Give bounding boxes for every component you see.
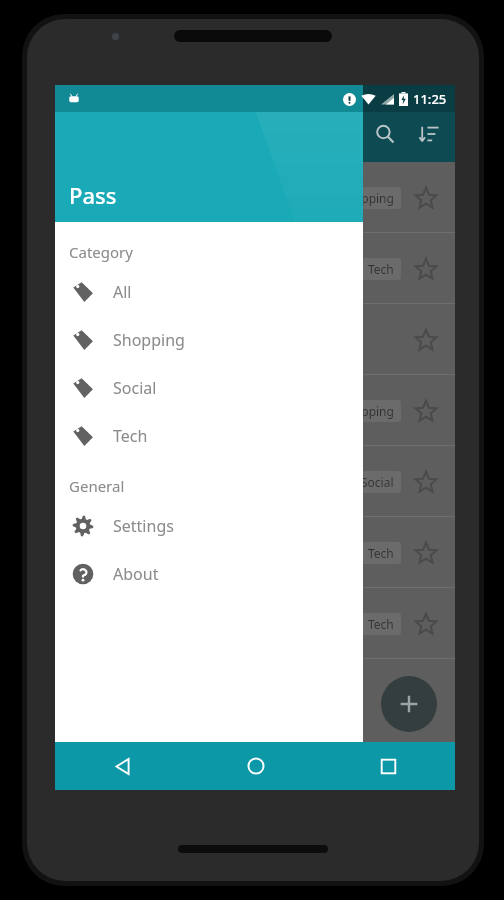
button[interactable]: Shopping — [55, 162, 455, 233]
button[interactable]: Favourite — [411, 396, 441, 426]
button[interactable]: Social — [55, 446, 455, 517]
button[interactable]: Recents — [322, 742, 455, 790]
staticText: Tech — [368, 616, 394, 632]
button[interactable]: Favourite — [411, 467, 441, 497]
button[interactable]: Favourite — [55, 304, 455, 375]
button[interactable]: Favourite — [411, 538, 441, 568]
button[interactable]: Tech — [55, 517, 455, 588]
button[interactable]: Add — [381, 676, 437, 732]
button[interactable]: Favourite — [411, 254, 441, 284]
button[interactable]: Tech — [55, 412, 363, 460]
staticText: 11:25 — [413, 90, 447, 108]
staticText: Social — [113, 377, 157, 399]
button[interactable]: Favourite — [411, 609, 441, 639]
staticText: Pass — [69, 180, 117, 210]
button[interactable]: Favourite — [411, 183, 441, 213]
button[interactable]: Search — [365, 114, 405, 154]
staticText: All — [113, 281, 132, 303]
button[interactable]: Back — [55, 742, 189, 790]
staticText: Tech — [368, 261, 394, 277]
button[interactable]: About — [55, 550, 363, 598]
button[interactable]: Shopping — [55, 316, 363, 364]
button[interactable]: Tech — [55, 588, 455, 659]
staticText: Shopping — [340, 190, 394, 206]
button[interactable]: Sort — [409, 114, 449, 154]
button[interactable]: Tech — [55, 233, 455, 304]
staticText: Shopping — [113, 329, 185, 351]
button[interactable]: Shopping — [55, 375, 455, 446]
staticText: Tech — [368, 545, 394, 561]
button[interactable]: Settings — [55, 502, 363, 550]
button[interactable]: Favourite — [411, 325, 441, 355]
staticText: Shopping — [340, 403, 394, 419]
staticText: About — [113, 563, 159, 585]
staticText: Social — [361, 474, 394, 490]
staticText: Category — [69, 242, 133, 262]
button[interactable]: Social — [55, 364, 363, 412]
staticText: Tech — [113, 425, 148, 447]
button[interactable]: All — [55, 268, 363, 316]
staticText: General — [69, 476, 125, 496]
staticText: Settings — [113, 515, 174, 537]
button[interactable]: Home — [189, 742, 322, 790]
